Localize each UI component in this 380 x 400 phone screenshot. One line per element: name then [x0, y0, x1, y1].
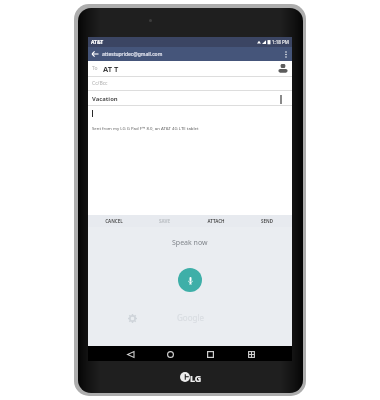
staticText: Google: [177, 312, 204, 323]
staticText: CANCEL: [105, 218, 123, 224]
button[interactable]: Back: [88, 47, 102, 61]
staticText: attestupridec@gmail.com: [102, 51, 163, 58]
button[interactable]: ATTACH: [190, 215, 241, 227]
staticText: AT T: [103, 64, 119, 74]
staticText: To: [92, 65, 98, 72]
button[interactable]: Attach: [275, 92, 287, 106]
button[interactable]: Contacts: [276, 62, 289, 75]
staticText: 1:18 PM: [272, 39, 289, 45]
button[interactable]: Recents: [204, 348, 216, 360]
button[interactable]: CANCEL: [88, 215, 139, 227]
staticText: SAVE: [159, 218, 170, 224]
button[interactable]: SEND: [241, 215, 292, 227]
button[interactable]: More options: [280, 48, 292, 60]
button[interactable]: Split screen: [245, 348, 257, 360]
staticText: ATTACH: [207, 218, 225, 224]
button[interactable]: Home: [164, 348, 176, 360]
staticText: Vacation: [92, 95, 118, 103]
button[interactable]: Microphone: [178, 268, 202, 292]
staticText: LG: [190, 372, 202, 384]
button[interactable]: SAVE: [139, 215, 190, 227]
button[interactable]: Back: [124, 348, 136, 360]
button[interactable]: Settings: [126, 312, 138, 324]
staticText: AT&T: [91, 39, 104, 46]
staticText: Sent from my LG G Pad F™ 8.0, an AT&T 4G…: [92, 125, 199, 131]
staticText: Speak now: [172, 238, 208, 248]
staticText: Cc/Bcc: [92, 80, 108, 87]
staticText: SEND: [261, 218, 273, 224]
